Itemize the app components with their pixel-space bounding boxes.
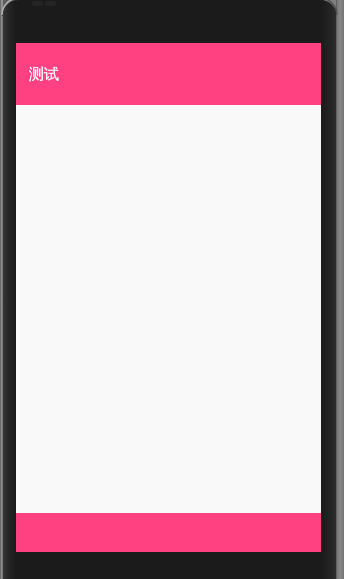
staticText: 测试 [29,65,59,84]
button[interactable]: 测试 [16,43,321,105]
